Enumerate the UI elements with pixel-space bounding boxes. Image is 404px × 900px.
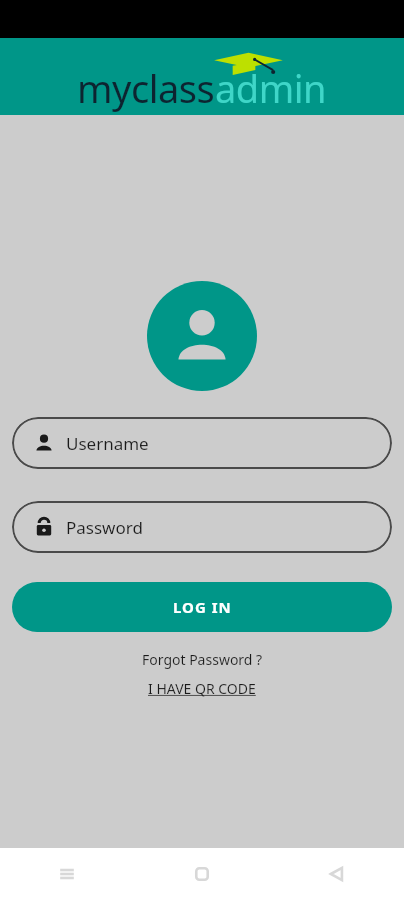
staticText: Username bbox=[66, 432, 149, 455]
button[interactable]: Back bbox=[269, 848, 404, 900]
button[interactable]: Password bbox=[12, 501, 392, 553]
button[interactable]: Username bbox=[12, 417, 392, 469]
button[interactable]: Menu bbox=[0, 848, 134, 900]
button[interactable]: LOG IN bbox=[12, 582, 392, 632]
button[interactable]: Home bbox=[134, 848, 269, 900]
button[interactable]: I HAVE QR CODE bbox=[140, 677, 264, 700]
staticText: LOG IN bbox=[173, 597, 232, 617]
button[interactable]: Forgot Password ? bbox=[134, 648, 271, 671]
staticText: Forgot Password ? bbox=[142, 650, 263, 669]
staticText: admin bbox=[215, 62, 327, 112]
staticText: I HAVE QR CODE bbox=[148, 679, 256, 698]
staticText: myclass bbox=[77, 62, 215, 112]
staticText: Password bbox=[66, 516, 143, 539]
